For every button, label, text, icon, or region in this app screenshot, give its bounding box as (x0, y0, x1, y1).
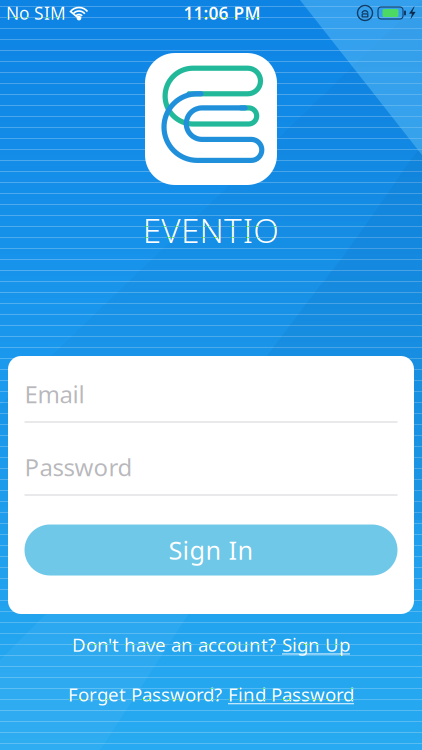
staticText: EVENTIO (143, 208, 279, 252)
button[interactable]: Sign In (24, 524, 397, 575)
button[interactable]: Sign Up (282, 632, 350, 657)
staticText: 11:06 PM (183, 1, 260, 24)
staticText: Sign Up (282, 632, 350, 657)
staticText: No SIM (6, 1, 66, 24)
staticText: Sign In (168, 533, 253, 567)
staticText: Password (24, 451, 132, 483)
staticText: Find Password (228, 682, 354, 707)
staticText: Email (24, 378, 84, 410)
button[interactable]: Find Password (228, 682, 354, 707)
staticText: Forget Password? (68, 682, 222, 707)
staticText: Don't have an account? (72, 632, 276, 657)
